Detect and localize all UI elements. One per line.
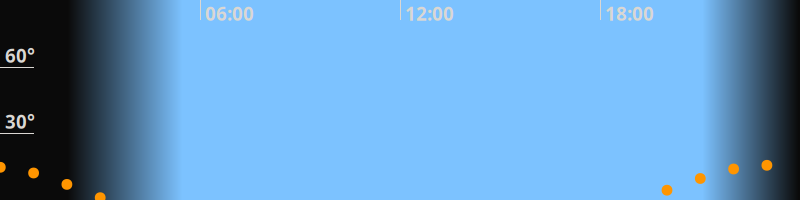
staticText: 30°: [5, 109, 35, 134]
staticText: 12:00: [405, 1, 454, 26]
staticText: 18:00: [605, 1, 654, 26]
button[interactable]: Hourly temperature forecast: [0, 0, 800, 200]
staticText: 60°: [5, 43, 35, 68]
staticText: 06:00: [205, 1, 254, 26]
